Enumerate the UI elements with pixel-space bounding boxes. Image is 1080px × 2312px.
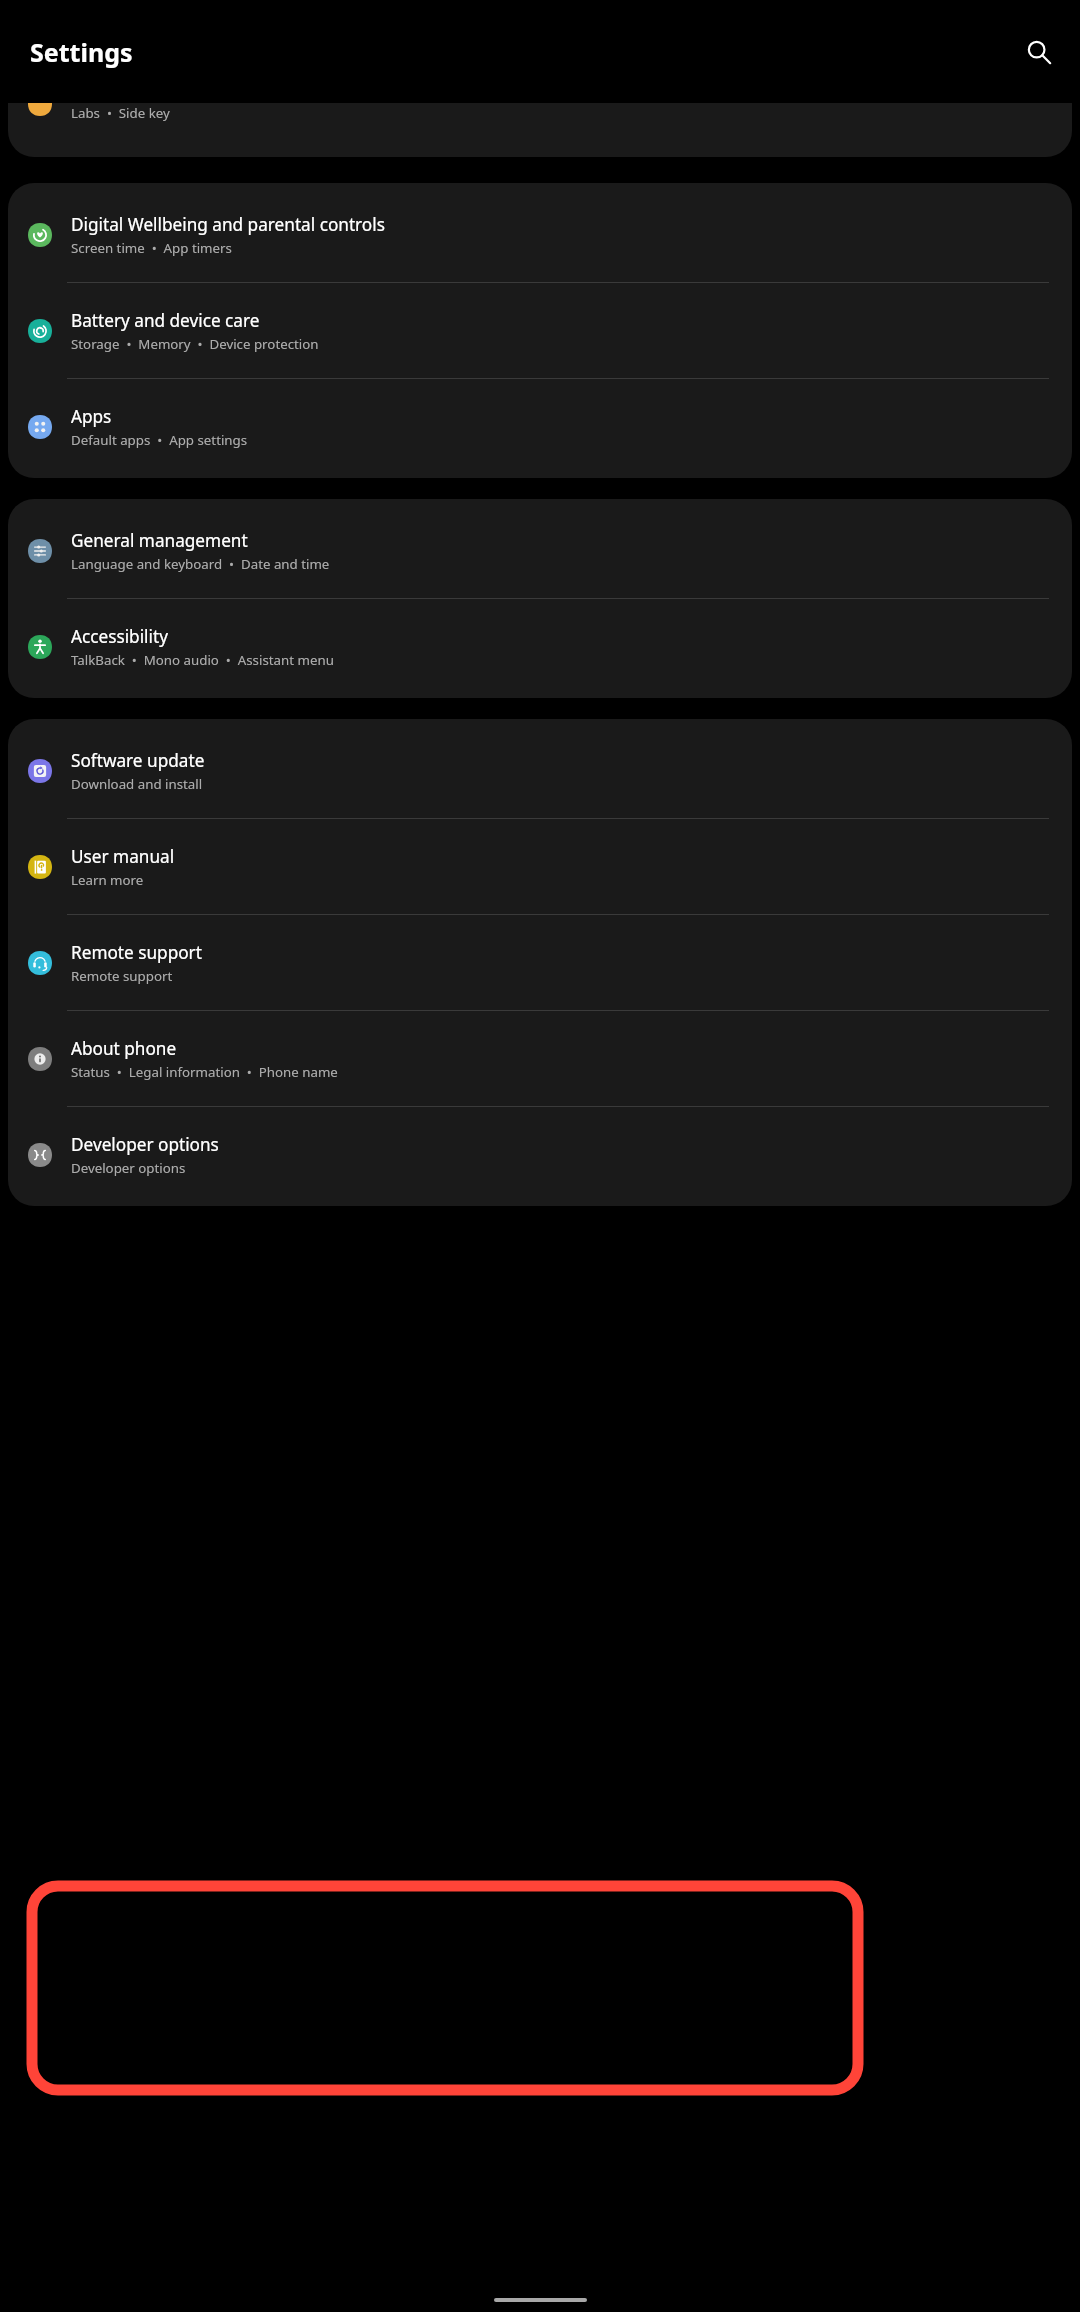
staticText: Download and install [71,775,203,793]
button[interactable]: Developer options [8,1107,1072,1202]
staticText: Apps [71,405,112,428]
staticText: Software update [71,749,205,772]
staticText: Learn more [71,871,144,889]
staticText: Developer options [71,1133,219,1156]
staticText: Labs • Side key [71,104,170,122]
button[interactable]: Apps [8,379,1072,474]
staticText: Remote support [71,941,202,964]
button[interactable]: Remote support [8,915,1072,1011]
staticText: About phone [71,1037,177,1060]
staticText: Default apps • App settings [71,431,248,449]
button[interactable]: Software update [8,723,1072,819]
button[interactable]: Search [1015,28,1063,76]
button[interactable]: Digital Wellbeing and parental controls [8,187,1072,283]
staticText: Status • Legal information • Phone name [71,1063,338,1081]
staticText: Screen time • App timers [71,239,232,257]
staticText: Language and keyboard • Date and time [71,555,330,573]
staticText: TalkBack • Mono audio • Assistant menu [71,651,334,669]
staticText: Accessibility [71,625,168,648]
button[interactable]: User manual [8,819,1072,915]
button[interactable]: Accessibility [8,599,1072,694]
staticText: Battery and device care [71,309,260,332]
staticText: Developer options [71,1159,186,1177]
button[interactable]: About phone [8,1011,1072,1107]
staticText: Storage • Memory • Device protection [71,335,319,353]
staticText: Digital Wellbeing and parental controls [71,213,385,236]
staticText: Remote support [71,967,173,985]
button[interactable]: Battery and device care [8,283,1072,379]
staticText: Settings [30,35,133,69]
button[interactable]: Labs • Side key [8,103,1072,157]
button[interactable]: General management [8,503,1072,599]
staticText: General management [71,529,248,552]
staticText: User manual [71,845,175,868]
